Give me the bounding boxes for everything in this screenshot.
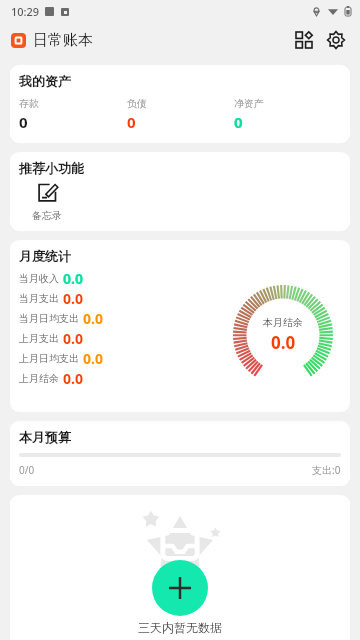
staticText: 我的资产 [19, 73, 71, 89]
staticText: 上月支出 [19, 332, 59, 345]
staticText: 0.0 [271, 331, 296, 354]
staticText: 三天内暂无数据 [138, 620, 222, 635]
button[interactable]: 本月预算 [10, 421, 350, 486]
staticText: 备忘录 [32, 209, 62, 222]
staticText: 支出:0 [312, 463, 341, 477]
staticText: 当月日均支出 [19, 312, 79, 325]
staticText: 0 [234, 112, 243, 132]
staticText: 本月预算 [19, 429, 71, 445]
staticText: 0.0 [63, 289, 83, 308]
button[interactable]: 月度统计 [10, 240, 350, 412]
button[interactable]: Add [152, 560, 208, 616]
staticText: 0.0 [63, 329, 83, 348]
staticText: 本月结余 [263, 316, 303, 329]
staticText: 日常账本 [33, 31, 93, 50]
staticText: 0 [19, 112, 28, 132]
staticText: 存款 [19, 97, 39, 110]
staticText: 月度统计 [19, 248, 71, 264]
button[interactable]: 我的资产 [10, 65, 350, 143]
staticText: 0.0 [63, 269, 83, 288]
button[interactable]: 备忘录 [32, 182, 62, 222]
staticText: 上月日均支出 [19, 352, 79, 365]
button[interactable]: Settings [320, 24, 352, 56]
staticText: 净资产 [234, 97, 264, 110]
staticText: 当月支出 [19, 292, 59, 305]
staticText: 推荐小功能 [19, 160, 84, 176]
staticText: 0.0 [83, 349, 103, 368]
staticText: 0/0 [19, 463, 35, 477]
button[interactable]: 推荐小功能 [10, 152, 350, 231]
staticText: 负债 [127, 97, 147, 110]
staticText: 上月结余 [19, 372, 59, 385]
staticText: 0.0 [83, 309, 103, 328]
button[interactable]: Apps [288, 24, 320, 56]
staticText: 0.0 [63, 369, 83, 388]
staticText: 当月收入 [19, 272, 59, 285]
staticText: 10:29 [11, 4, 40, 19]
staticText: 0 [127, 112, 136, 132]
